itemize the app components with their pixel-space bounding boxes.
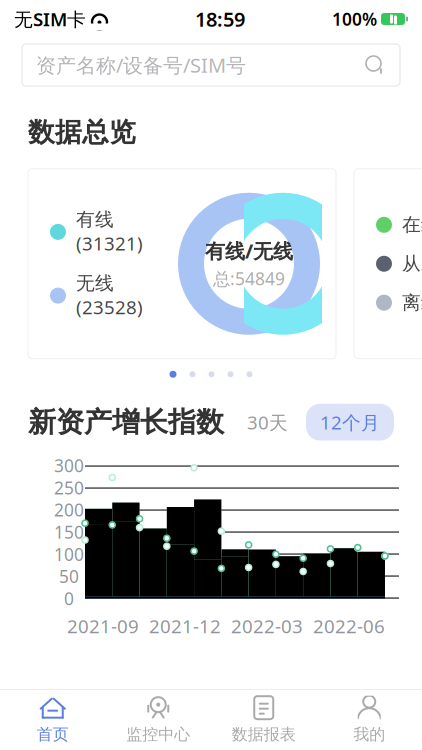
staticText: 200 bbox=[54, 498, 84, 521]
staticText: 无SIM卡 bbox=[14, 7, 86, 31]
button[interactable]: 监控中心 bbox=[105, 693, 211, 747]
button[interactable]: 有线无线资产总览 bbox=[28, 169, 336, 359]
staticText: 在线 bbox=[402, 213, 422, 236]
staticText: 无线(23528) bbox=[76, 272, 143, 319]
staticText: 2022-03 bbox=[231, 613, 303, 638]
staticText: 2022-06 bbox=[313, 613, 385, 638]
staticText: 300 bbox=[54, 454, 84, 477]
staticText: 150 bbox=[54, 520, 84, 543]
staticText: 总:54849 bbox=[213, 267, 285, 290]
staticText: 数据报表 bbox=[232, 725, 296, 744]
staticText: 250 bbox=[54, 476, 84, 499]
staticText: 有线(31321) bbox=[76, 208, 143, 256]
staticText: 18:59 bbox=[195, 6, 245, 32]
button[interactable]: 12个月 bbox=[306, 404, 394, 441]
staticText: 2021-09 bbox=[67, 613, 139, 638]
staticText: 我的 bbox=[353, 725, 385, 744]
staticText: 从未 bbox=[402, 252, 422, 275]
button[interactable]: 在线状态总览 bbox=[354, 169, 422, 359]
button[interactable]: 我的 bbox=[316, 693, 422, 747]
button[interactable]: 搜索资产名称、设备号或SIM号 bbox=[22, 44, 400, 86]
staticText: 有线/无线 bbox=[205, 237, 293, 264]
staticText: 2021-12 bbox=[149, 613, 221, 638]
staticText: 100 bbox=[54, 543, 84, 566]
button[interactable]: 数据报表 bbox=[211, 693, 316, 747]
staticText: 100% bbox=[332, 7, 377, 30]
staticText: 资产名称/设备号/SIM号 bbox=[36, 52, 246, 78]
staticText: 离线 bbox=[402, 291, 422, 314]
staticText: 12个月 bbox=[320, 410, 380, 435]
staticText: 30天 bbox=[247, 410, 288, 435]
staticText: 数据总览 bbox=[28, 116, 136, 149]
button[interactable]: 30天 bbox=[241, 405, 294, 440]
staticText: 新资产增长指数 bbox=[28, 405, 224, 439]
staticText: 首页 bbox=[37, 725, 69, 744]
staticText: 0 bbox=[64, 587, 74, 610]
staticText: 50 bbox=[59, 565, 79, 588]
button[interactable]: 首页 bbox=[0, 693, 105, 747]
staticText: 监控中心 bbox=[126, 725, 190, 744]
